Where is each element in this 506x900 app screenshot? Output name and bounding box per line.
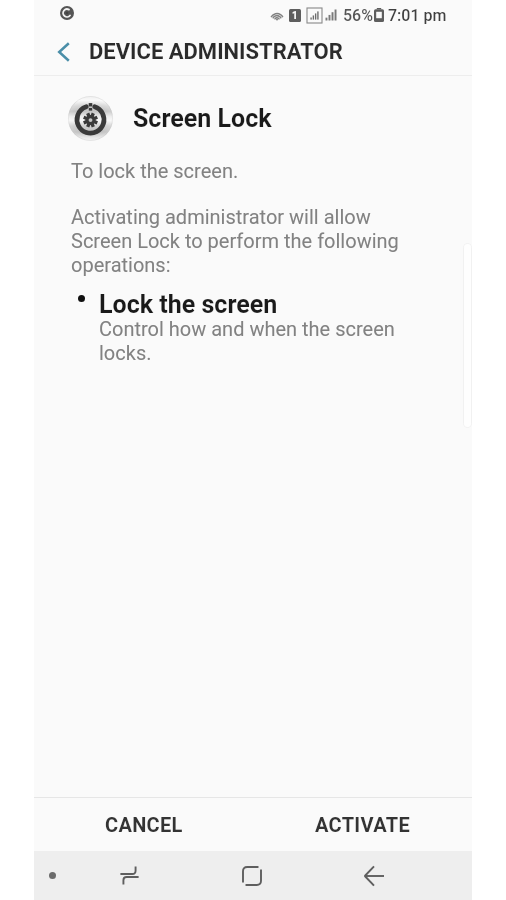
button[interactable]: ACTIVATE	[253, 798, 472, 851]
staticText: 7:01 pm	[388, 6, 447, 25]
staticText: CANCEL	[105, 813, 183, 836]
button[interactable]: Back	[346, 851, 402, 900]
button[interactable]: CANCEL	[34, 798, 253, 851]
staticText: ACTIVATE	[315, 813, 410, 836]
staticText: Control how and when the screen locks.	[99, 317, 395, 365]
staticText: Screen Lock	[133, 104, 272, 133]
button[interactable]: Home	[224, 851, 280, 900]
button[interactable]: Recents	[101, 851, 157, 900]
staticText: Lock the screen	[99, 292, 278, 319]
staticText: 1	[292, 10, 298, 22]
staticText: To lock the screen.	[71, 159, 239, 183]
button[interactable]: Navigate up	[41, 29, 87, 75]
staticText: DEVICE ADMINISTRATOR	[89, 38, 343, 64]
staticText: Activating administrator will allow Scre…	[71, 205, 399, 277]
staticText: 56%	[343, 6, 373, 25]
